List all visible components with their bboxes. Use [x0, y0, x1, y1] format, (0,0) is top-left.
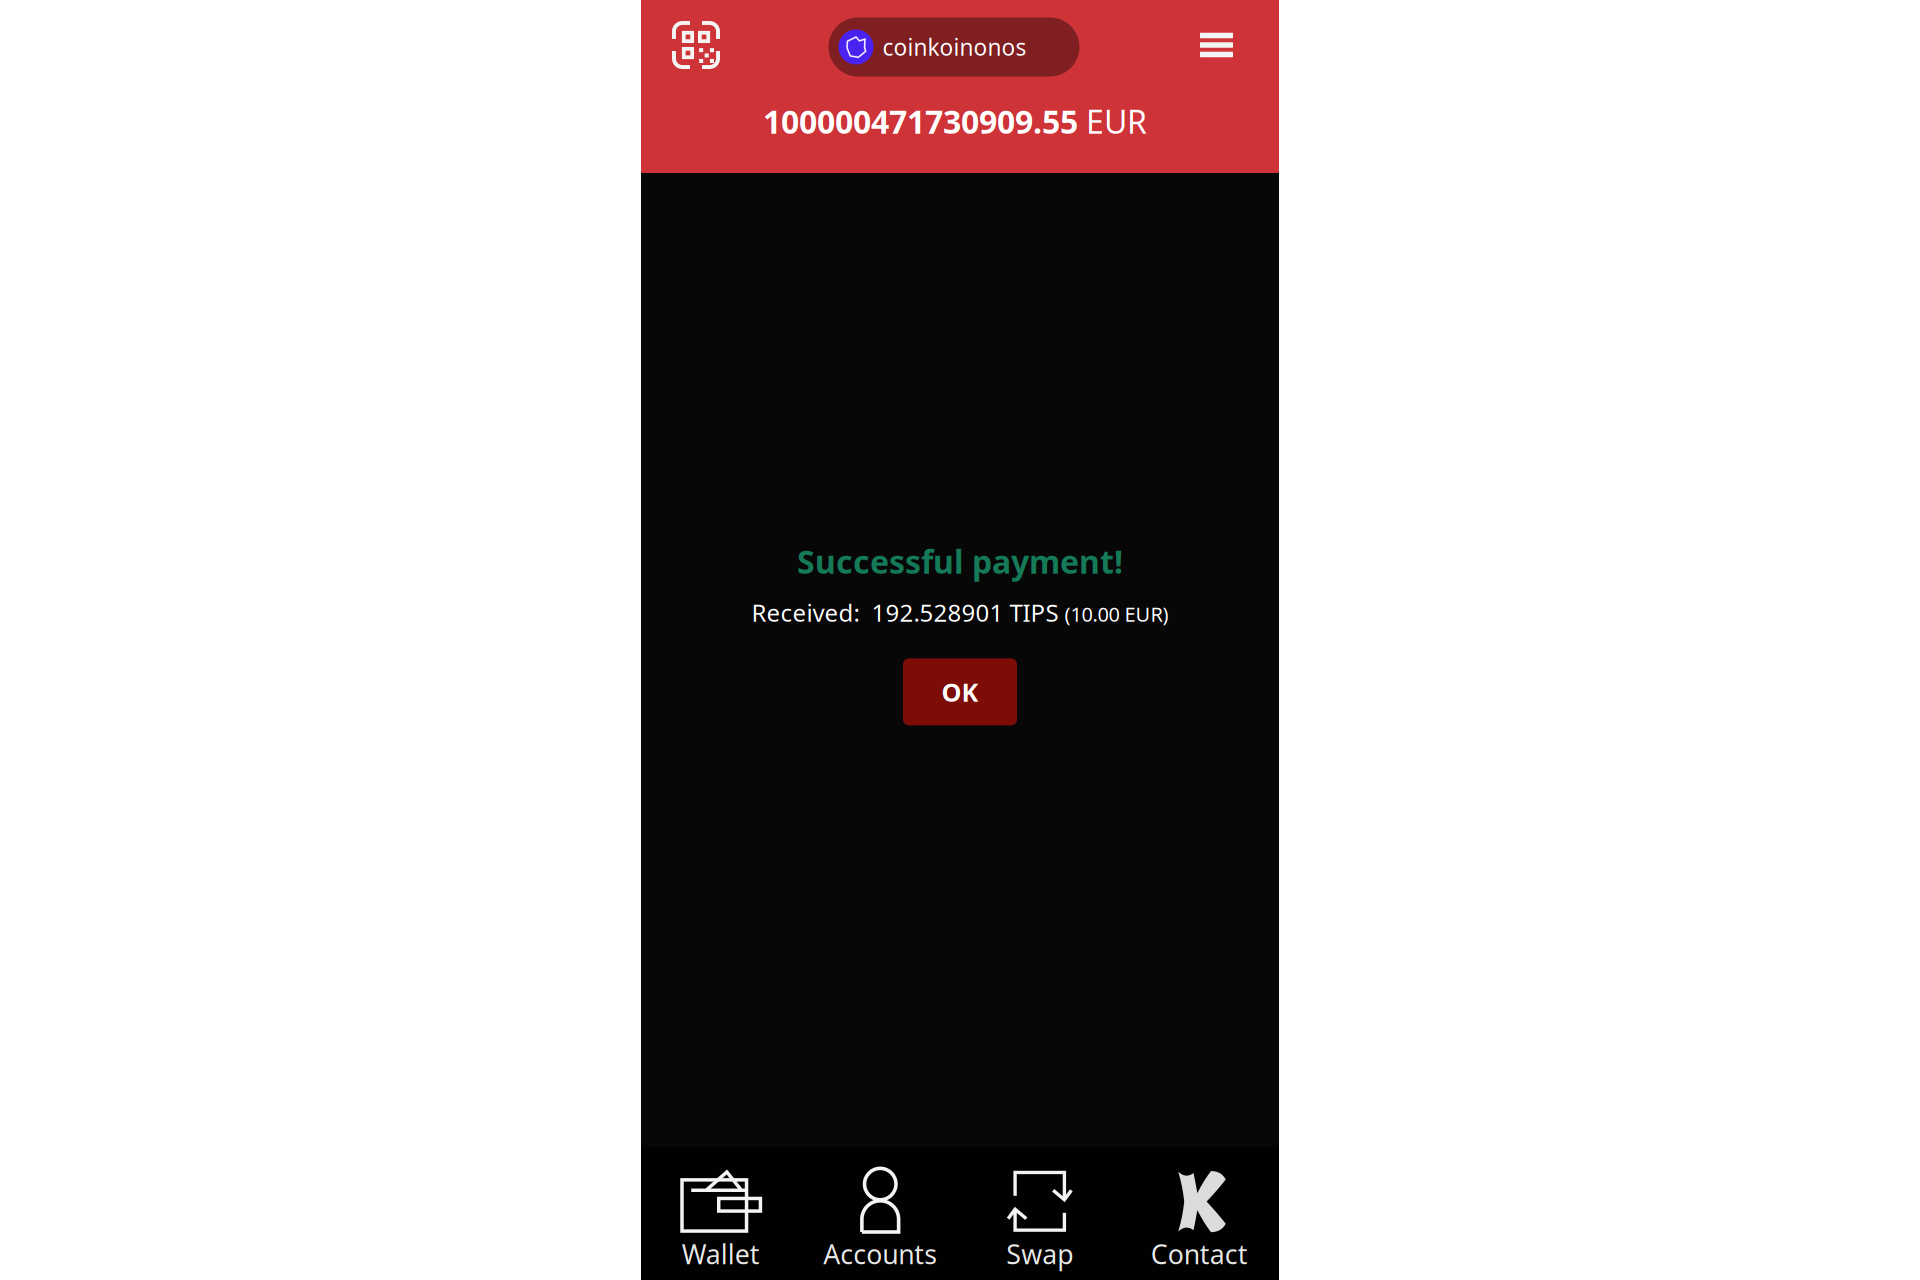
button[interactable]: coinkoinonos [828, 17, 1079, 76]
staticText: Wallet [682, 1236, 760, 1272]
staticText: Successful payment! [797, 540, 1123, 582]
staticText: Swap [1006, 1236, 1073, 1272]
staticText: Received: 192.528901 TIPS [751, 596, 1064, 628]
button[interactable]: OK [903, 658, 1017, 725]
staticText: 100000471730909.55 [763, 100, 1078, 142]
button[interactable]: Menu [1188, 27, 1279, 67]
staticText: OK [941, 675, 978, 709]
button[interactable]: Wallet [641, 1146, 800, 1280]
staticText: Contact [1151, 1236, 1248, 1272]
staticText: coinkoinonos [882, 32, 1026, 62]
staticText: (10.00 EUR) [1064, 601, 1168, 627]
staticText: Accounts [823, 1236, 937, 1272]
button[interactable]: Accounts [800, 1146, 960, 1280]
button[interactable]: Scan QR code [641, 15, 732, 79]
button[interactable]: Contact [1119, 1146, 1279, 1280]
staticText: EUR [1078, 100, 1147, 142]
button[interactable]: Swap [960, 1146, 1119, 1280]
